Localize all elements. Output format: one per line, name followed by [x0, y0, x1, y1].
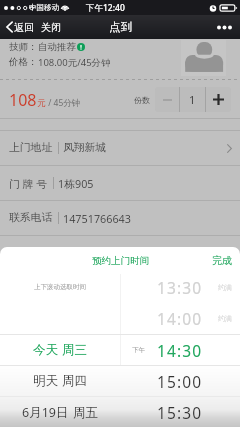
staticText: 联系电话	[9, 211, 53, 225]
button[interactable]: Increase quantity	[206, 87, 231, 112]
staticText: 下午12:40	[86, 2, 125, 14]
staticText: 中国移动	[29, 3, 59, 12]
staticText: 周五	[73, 405, 98, 421]
button[interactable]: Decrease quantity	[155, 87, 179, 112]
button[interactable]: 关闭	[39, 15, 63, 39]
staticText: 108.00元/45分钟	[38, 56, 111, 69]
staticText: 约满	[218, 314, 232, 323]
staticText: 价格：	[9, 56, 38, 68]
staticText: 上门地址	[9, 141, 53, 155]
button[interactable]: 联系电话	[0, 201, 240, 235]
button[interactable]: 6月19日	[0, 397, 240, 427]
staticText: 点到	[109, 20, 132, 34]
staticText: 元	[37, 98, 46, 109]
staticText: 完成	[212, 254, 232, 267]
staticText: 15:00	[157, 371, 203, 392]
button[interactable]: 返回	[4, 15, 36, 39]
staticText: 门 牌 号	[9, 176, 48, 191]
staticText: 约满	[218, 283, 232, 292]
staticText: 1栋905	[58, 176, 94, 191]
staticText: 15:30	[157, 402, 203, 423]
staticText: 108	[9, 89, 37, 111]
button[interactable]: 上门地址	[0, 131, 240, 165]
staticText: 14751766643	[63, 211, 131, 226]
staticText: 上下滚动选取时间	[34, 283, 86, 291]
staticText: 14:30	[157, 340, 203, 361]
button[interactable]: 门 牌 号	[0, 166, 240, 200]
staticText: 今天	[33, 342, 58, 358]
staticText: 1	[189, 92, 196, 107]
staticText: 周四	[62, 373, 87, 389]
staticText: 预约上门时间	[92, 255, 149, 267]
staticText: / 45分钟	[46, 97, 81, 109]
staticText: 13:30	[157, 277, 203, 298]
staticText: 技师：	[9, 41, 38, 53]
button[interactable]: 明天	[0, 366, 240, 396]
staticText: 份数	[134, 95, 150, 105]
staticText: 返回	[14, 21, 34, 34]
staticText: 6月19日	[22, 404, 69, 421]
staticText: 周三	[62, 342, 87, 358]
staticText: 下午	[132, 346, 145, 354]
staticText: 自动推荐	[38, 41, 76, 53]
staticText: 凤翔新城	[63, 141, 107, 155]
button[interactable]: More options	[209, 15, 240, 39]
button[interactable]: 完成	[204, 247, 240, 274]
staticText: 明天	[33, 373, 58, 389]
button[interactable]: 今天	[0, 335, 240, 365]
staticText: 关闭	[41, 21, 61, 34]
staticText: 14:00	[157, 308, 203, 329]
